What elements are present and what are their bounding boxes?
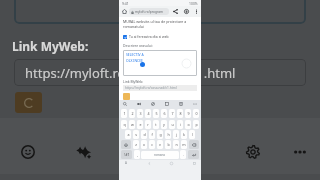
staticText: y <box>163 122 165 127</box>
button[interactable]: SELECTIV A <box>123 50 197 76</box>
button[interactable]: b <box>165 140 171 149</box>
staticText: Descriere orasului: <box>123 43 153 48</box>
button[interactable]: d <box>141 130 147 139</box>
button[interactable]: Space <box>141 151 179 159</box>
button[interactable]: 9 <box>185 109 191 118</box>
staticText: t <box>155 122 157 127</box>
button[interactable]: c <box>149 140 155 149</box>
button[interactable]: Emoji <box>12 134 44 170</box>
button[interactable]: t <box>153 120 159 129</box>
staticText: k <box>183 132 185 137</box>
staticText: A <box>125 161 127 165</box>
button[interactable]: 3 <box>137 109 143 118</box>
button[interactable]: Keyboard tool <box>122 101 128 107</box>
button[interactable]: Key <box>188 150 199 159</box>
staticText: . <box>183 152 184 157</box>
button[interactable]: n <box>173 140 179 149</box>
button[interactable]: f <box>149 130 155 139</box>
button[interactable]: !#1 <box>121 150 132 159</box>
button[interactable]: x <box>141 140 147 149</box>
button[interactable]: Effects <box>68 134 100 170</box>
button[interactable]: 0 <box>193 109 199 118</box>
button[interactable]: h <box>165 130 171 139</box>
button[interactable]: g <box>157 130 163 139</box>
button[interactable]: m <box>181 140 187 149</box>
button[interactable]: Share <box>171 7 180 16</box>
button[interactable]: 1 <box>121 109 127 118</box>
button[interactable]: Key <box>121 140 131 149</box>
button[interactable]: Keyboard tool <box>164 101 170 107</box>
staticText: !#1 <box>124 152 130 157</box>
button[interactable]: y <box>161 120 167 129</box>
button[interactable]: l <box>189 130 195 139</box>
button[interactable]: Home <box>121 8 128 15</box>
button[interactable]: p <box>193 120 199 129</box>
staticText: z <box>135 142 137 147</box>
staticText: 3 <box>139 111 142 116</box>
staticText: d <box>143 132 146 137</box>
button[interactable]: v <box>157 140 163 149</box>
button[interactable]: q <box>121 120 127 129</box>
button[interactable]: Downloads <box>182 7 191 16</box>
staticText: 5 <box>155 111 158 116</box>
button[interactable]: a <box>125 130 131 139</box>
staticText: 4 <box>147 111 150 116</box>
button[interactable]: https://myloft.ro/casa-nad/v1.html <box>14 59 306 86</box>
button[interactable]: e <box>137 120 143 129</box>
staticText: w <box>131 122 134 127</box>
staticText: OLX INCEE <box>126 58 143 63</box>
button[interactable]: k <box>181 130 187 139</box>
button[interactable]: u <box>169 120 175 129</box>
button[interactable]: i <box>177 120 183 129</box>
button[interactable]: More options <box>284 134 316 170</box>
staticText: l <box>192 132 193 137</box>
staticText: i <box>180 122 181 127</box>
button[interactable]: o <box>185 120 191 129</box>
button[interactable]: Keyboard tool <box>178 101 184 107</box>
staticText: c <box>151 142 153 147</box>
button[interactable]: , <box>134 150 140 159</box>
button[interactable]: 2 <box>129 109 135 118</box>
button[interactable]: Back <box>146 160 152 166</box>
staticText: 9:41 <box>122 1 129 6</box>
button[interactable]: https://myloft.ro/casa-nad/v1.html <box>123 85 197 91</box>
button[interactable]: . <box>180 150 186 159</box>
staticText: romana <box>154 153 166 157</box>
button[interactable]: Refresh <box>15 92 42 113</box>
button[interactable]: 8 <box>177 109 183 118</box>
button[interactable]: Keyboard <box>123 160 129 166</box>
button[interactable]: 4 <box>145 109 151 118</box>
button[interactable]: Copy link <box>123 93 130 100</box>
staticText: o <box>187 122 190 127</box>
button[interactable]: 7 <box>169 109 175 118</box>
staticText: 7 <box>171 111 174 116</box>
button[interactable]: w <box>129 120 135 129</box>
staticText: myloft.ro/program <box>135 10 163 14</box>
staticText: 100% <box>189 1 198 6</box>
button[interactable]: More options <box>193 8 200 15</box>
staticText: h <box>167 132 170 137</box>
staticText: s <box>135 132 137 137</box>
staticText: b <box>167 142 170 147</box>
button[interactable]: Key <box>189 140 199 149</box>
button[interactable]: Settings <box>237 134 269 170</box>
button[interactable]: 5 <box>153 109 159 118</box>
button[interactable]: Keyboard tool <box>192 101 198 107</box>
button[interactable]: Tu ai fereastra dta si web <box>123 34 169 39</box>
button[interactable]: Recents <box>191 160 197 166</box>
staticText: Link MyWeb: <box>123 79 144 84</box>
button[interactable]: Keyboard tool <box>136 101 142 107</box>
staticText: e <box>139 122 142 127</box>
staticText: x <box>143 142 145 147</box>
button[interactable]: z <box>133 140 139 149</box>
button[interactable]: j <box>173 130 179 139</box>
button[interactable]: s <box>133 130 139 139</box>
button[interactable]: r <box>145 120 151 129</box>
button[interactable]: Keyboard tool <box>150 101 156 107</box>
button[interactable]: Home <box>168 160 174 166</box>
button[interactable]: 6 <box>161 109 167 118</box>
button[interactable]: myloft.ro/program <box>129 8 169 15</box>
staticText: 9 <box>187 111 190 116</box>
staticText: SELECTIV A <box>126 52 144 57</box>
staticText: q <box>123 122 126 127</box>
